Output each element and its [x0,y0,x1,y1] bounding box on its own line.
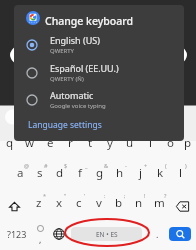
button[interactable]: Español (EE.UU.) [14,59,184,86]
button[interactable]: Switch language [49,221,68,246]
staticText: Language settings [28,119,102,131]
button[interactable]: Language settings [28,119,102,131]
staticText: v [96,195,102,211]
button[interactable]: & [90,163,110,189]
staticText: l [179,165,182,181]
staticText: 1 [14,132,18,139]
staticText: h [116,165,124,181]
button[interactable]: 3 [40,133,60,159]
staticText: : [104,192,106,199]
staticText: ; [124,192,126,199]
button[interactable]: $ [50,163,70,189]
staticText: English (US) [50,34,100,46]
staticText: , [39,233,42,245]
staticText: u [126,135,134,151]
button[interactable]: " [49,193,69,219]
button[interactable]: ! [129,193,149,219]
staticText: ) [185,162,187,169]
button[interactable]: _ [70,163,90,189]
staticText: t [88,135,93,151]
staticText: b [115,195,123,211]
staticText: ?123 [7,228,27,240]
staticText: Google voice typing [50,102,106,110]
button[interactable]: 5 [80,133,100,159]
staticText: p [184,135,192,151]
button[interactable]: . [148,221,166,246]
staticText: m [154,195,165,211]
button[interactable]: 4 [60,133,80,159]
button[interactable]: # [30,163,50,189]
staticText: QWERTY [50,47,75,55]
staticText: n [135,195,143,211]
staticText: # [44,162,48,169]
staticText: g [96,165,104,181]
staticText: x [56,195,63,211]
button[interactable]: Shift [0,193,29,219]
button[interactable]: ) [170,163,190,189]
button[interactable]: 6 [100,133,120,159]
staticText: $ [64,162,68,169]
button[interactable]: 2 [20,133,40,159]
staticText: ( [165,162,167,169]
staticText: " [64,192,67,199]
staticText: c [76,195,82,211]
button[interactable]: Backspace [169,193,196,219]
staticText: & [104,162,109,169]
staticText: i [149,135,152,151]
staticText: Automatic [50,89,94,101]
staticText: ? [164,192,167,199]
staticText: s [37,165,43,181]
staticText: o [167,135,174,151]
staticText: e [47,135,54,151]
button[interactable]: Emoji [30,221,50,246]
staticText: Change keyboard [45,14,134,28]
button[interactable]: 0 [180,133,196,159]
staticText: d [56,165,64,181]
staticText: r [68,135,73,151]
button[interactable]: 8 [140,133,160,159]
button[interactable]: ? [149,193,169,219]
staticText: QWERTY (Ñ) [50,75,84,83]
button[interactable]: + [130,163,150,189]
button[interactable]: English (US) [14,31,184,58]
button[interactable]: ; [109,193,129,219]
button[interactable]: ?123 [2,221,32,246]
button[interactable]: EN • ES [71,227,142,241]
staticText: Español (EE.UU.) [50,62,119,74]
staticText: w [25,135,35,151]
button[interactable]: - [110,163,130,189]
staticText: y [107,135,113,151]
staticText: + [144,162,148,169]
staticText: - [125,162,127,169]
staticText: @ [24,162,29,169]
staticText: q [6,135,14,151]
staticText: _ [85,162,88,169]
button[interactable]: Automatic [14,86,184,113]
button[interactable]: 7 [120,133,140,159]
staticText: ' [84,192,86,199]
button[interactable]: ' [69,193,89,219]
button[interactable]: @ [10,163,30,189]
staticText: k [157,165,164,181]
staticText: . [156,228,159,240]
staticText: z [36,195,42,211]
staticText: a [17,165,24,181]
button[interactable]: 1 [0,133,20,159]
button[interactable]: : [89,193,109,219]
button[interactable]: * [29,193,49,219]
staticText: ! [144,192,146,199]
button[interactable]: ( [150,163,170,189]
staticText: f [78,165,82,181]
button[interactable]: Search [169,227,191,241]
staticText: EN • ES [96,230,118,239]
button[interactable]: 9 [160,133,180,159]
